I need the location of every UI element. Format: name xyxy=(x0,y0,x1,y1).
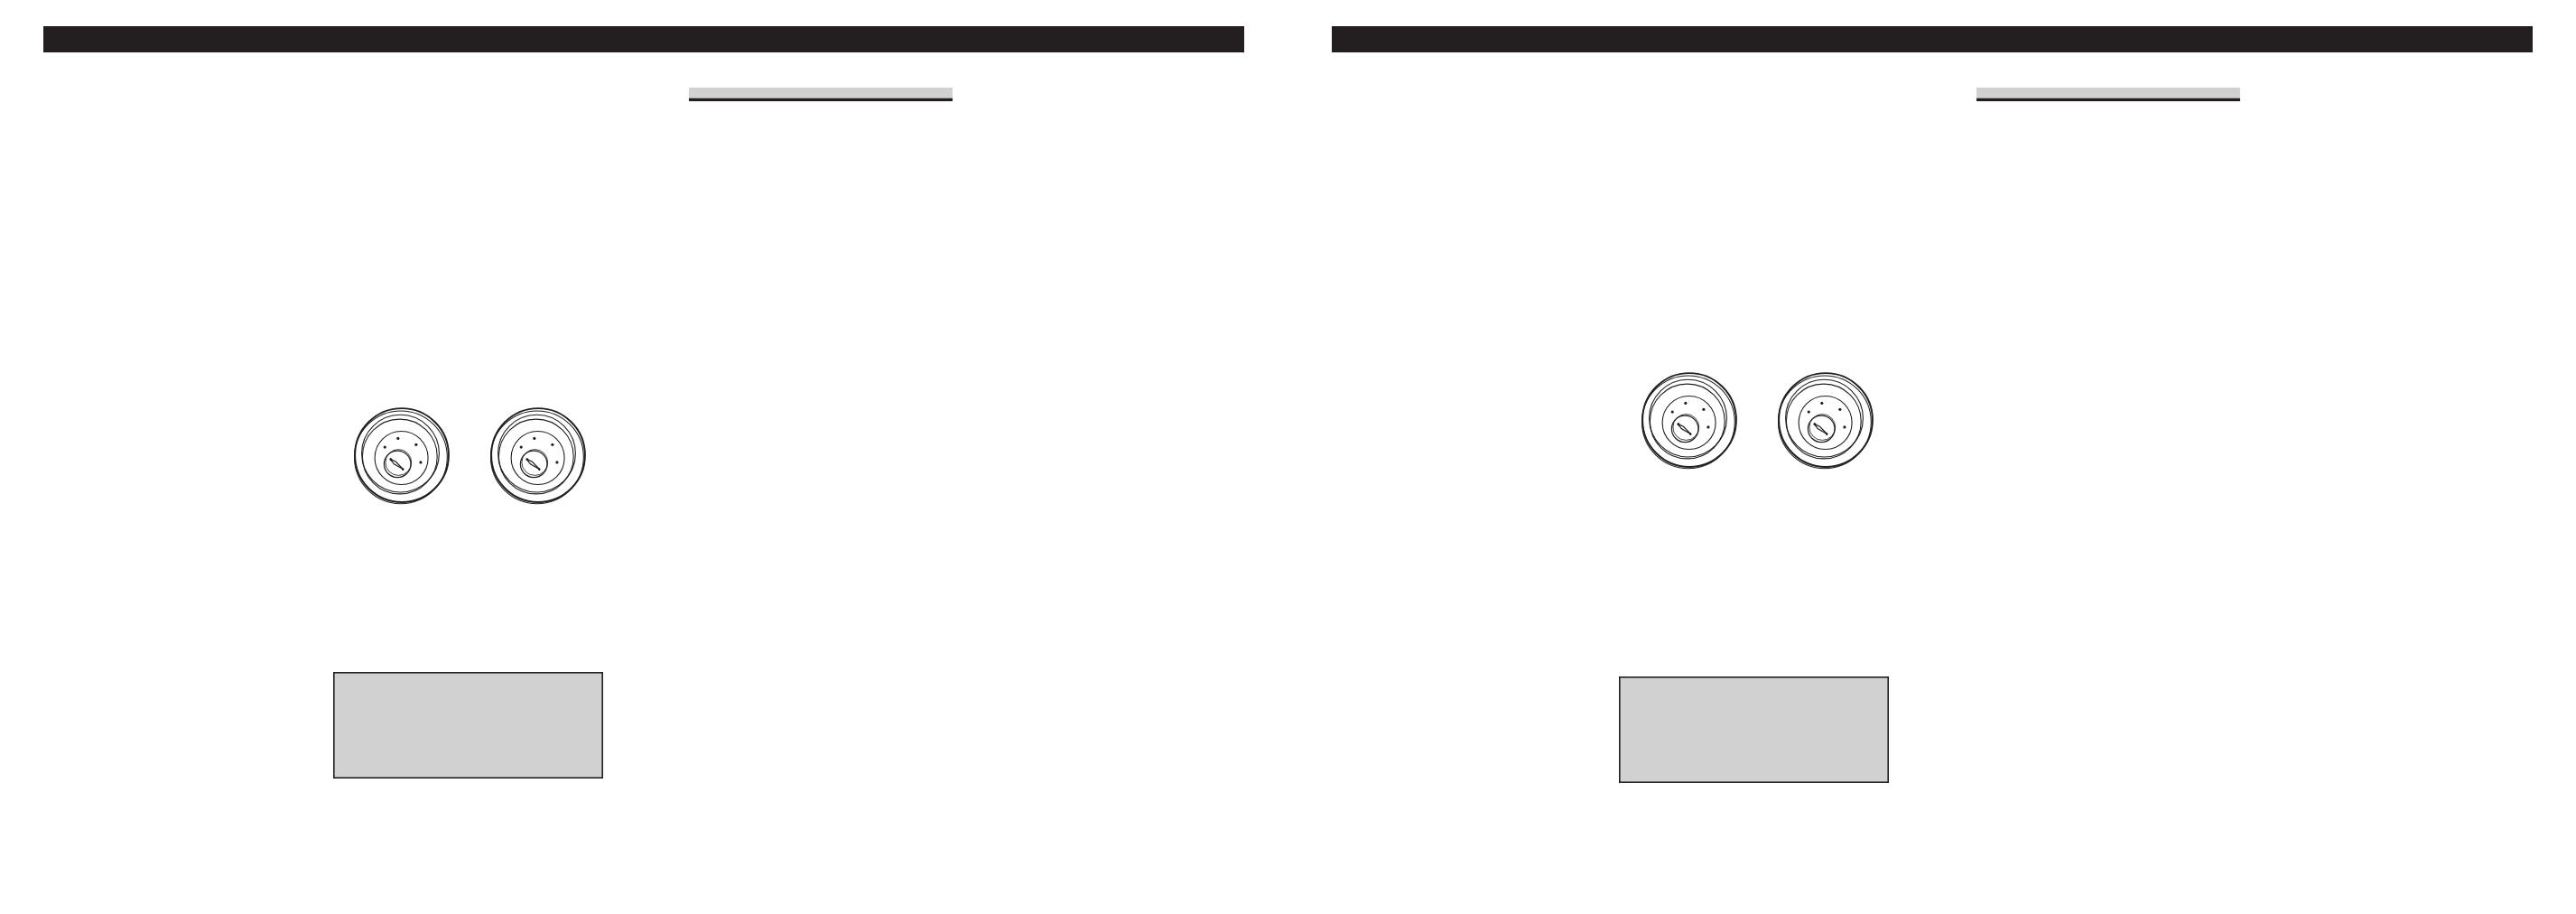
button[interactable]: Primary dial xyxy=(1642,373,1736,467)
button[interactable]: Secondary dial xyxy=(1779,373,1873,467)
button[interactable]: Secondary dial xyxy=(491,408,585,502)
button[interactable]: Primary dial xyxy=(355,408,449,502)
button[interactable]: Card xyxy=(333,672,603,779)
button[interactable]: App bar xyxy=(43,26,1244,52)
button[interactable]: Search field xyxy=(689,88,953,101)
button[interactable]: App bar xyxy=(1332,26,2533,52)
button[interactable]: Card xyxy=(1619,676,1889,783)
button[interactable]: Search field xyxy=(1976,88,2240,101)
